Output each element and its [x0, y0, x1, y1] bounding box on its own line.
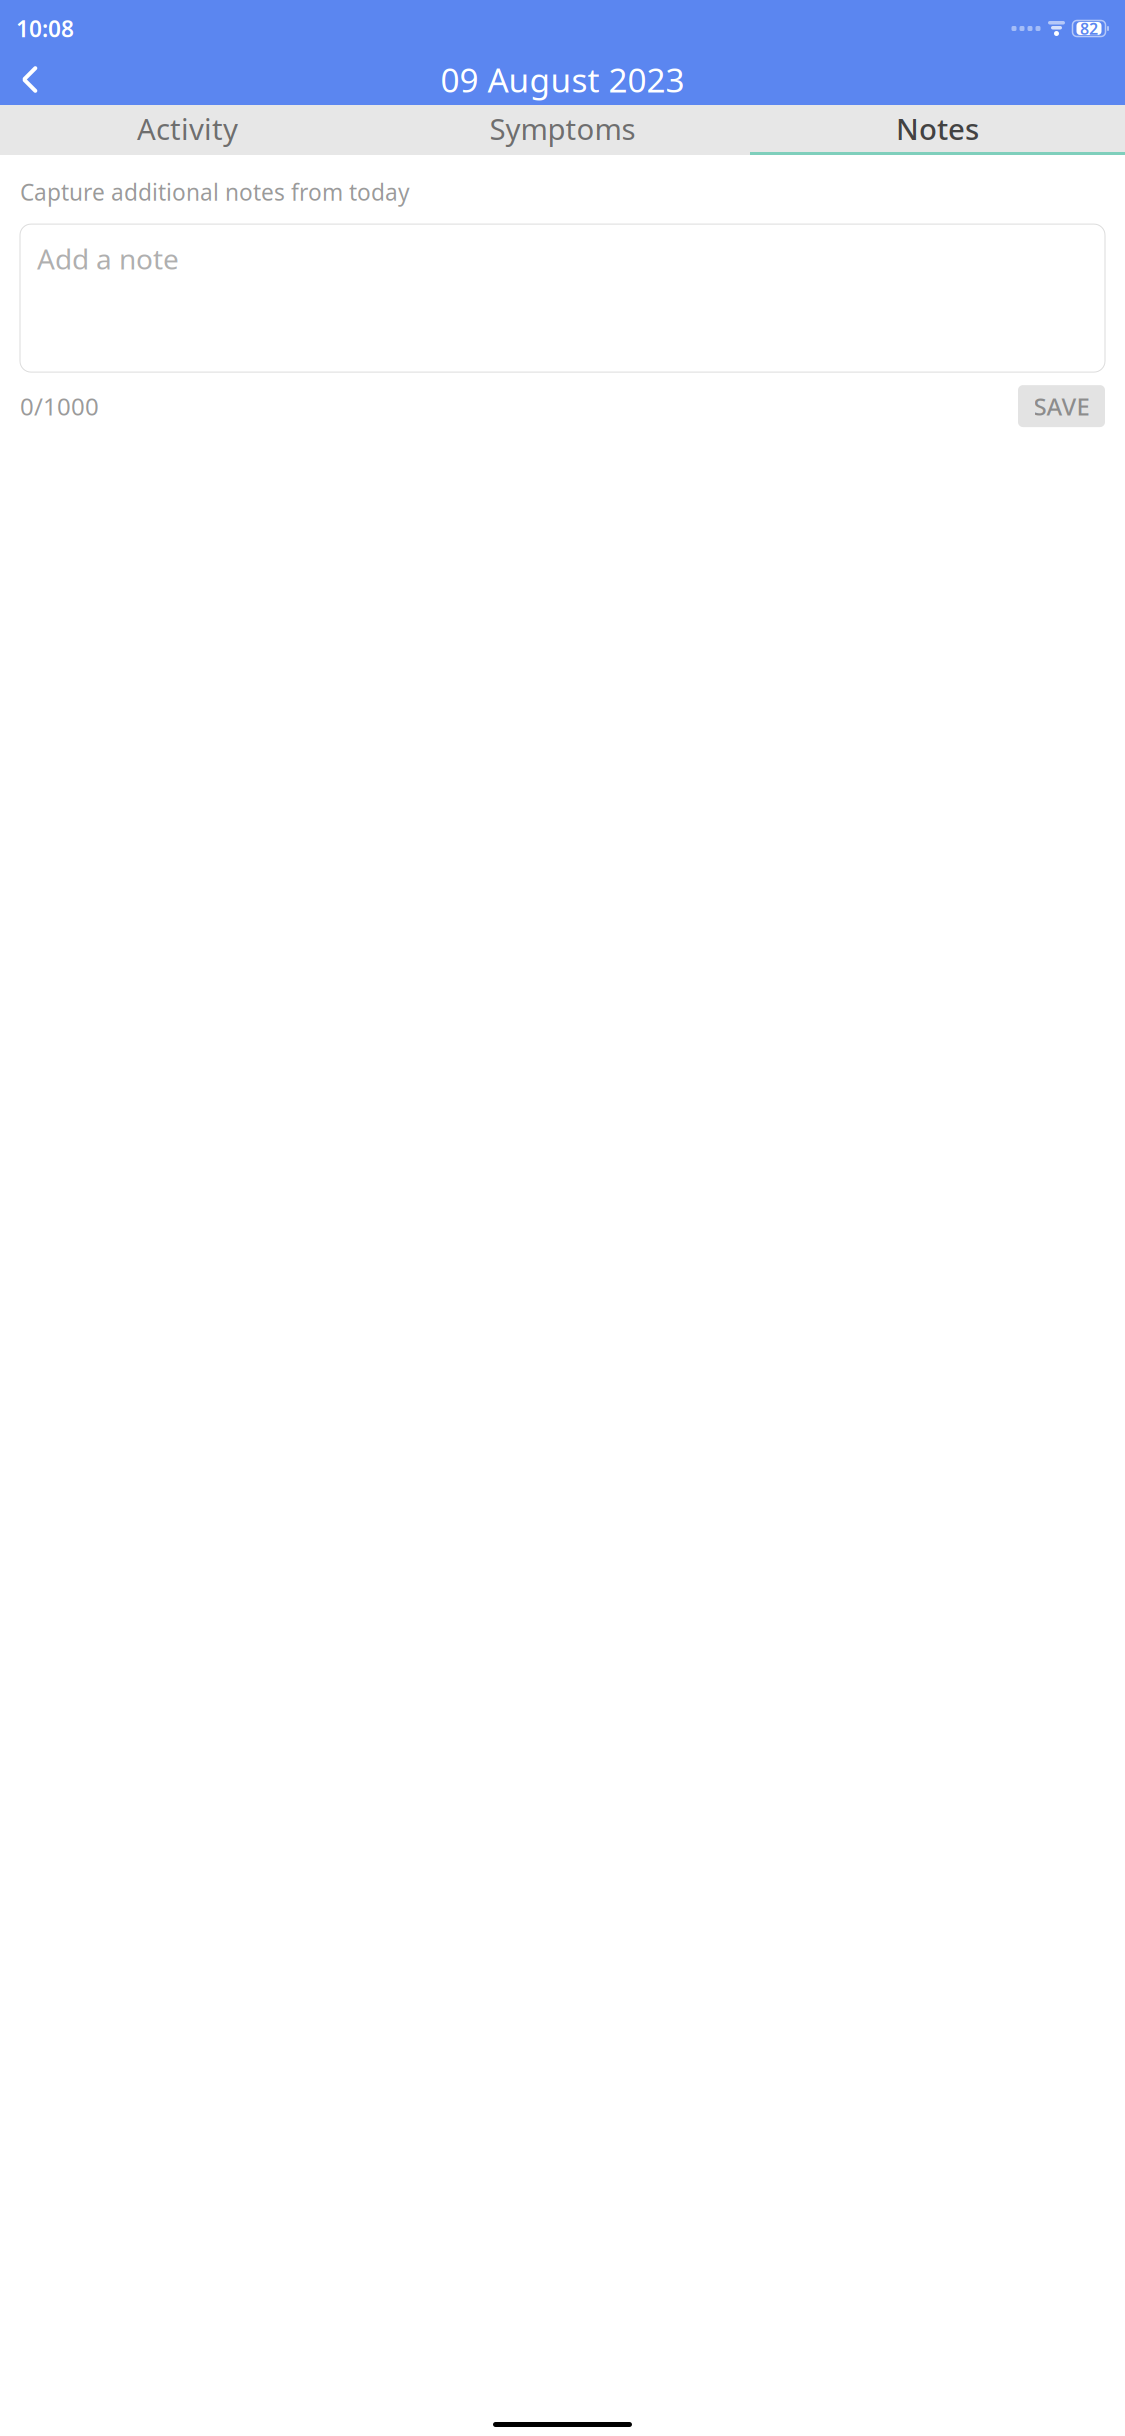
staticText: Capture additional notes from today [20, 177, 410, 207]
button[interactable]: Add a note [20, 224, 1105, 372]
staticText: 0/1000 [20, 390, 99, 422]
staticText: Symptoms [489, 109, 635, 148]
staticText: 10:08 [16, 13, 74, 43]
staticText: Notes [896, 109, 979, 148]
button[interactable]: Symptoms [375, 105, 750, 155]
staticText: Add a note [37, 240, 179, 277]
staticText: Activity [137, 109, 238, 148]
button[interactable]: Notes [750, 105, 1125, 155]
staticText: 82 [1080, 18, 1098, 39]
button[interactable]: SAVE [1018, 385, 1105, 427]
staticText: 09 August 2023 [440, 57, 684, 102]
button[interactable]: Back [6, 55, 54, 103]
button[interactable]: Activity [0, 105, 375, 155]
staticText: SAVE [1033, 390, 1089, 422]
